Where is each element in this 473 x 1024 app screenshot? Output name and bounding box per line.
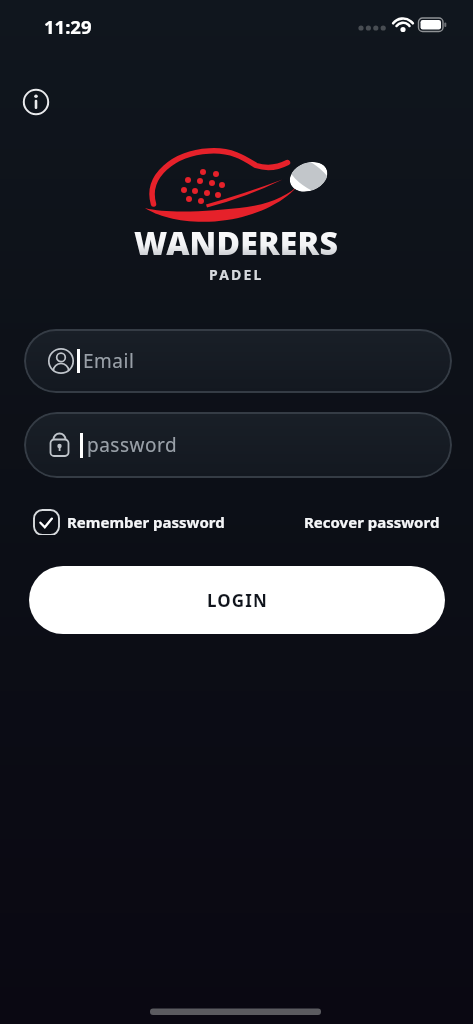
- button[interactable]: Remember password: [33, 508, 225, 535]
- button[interactable]: password: [24, 412, 452, 478]
- staticText: WANDERERS: [134, 221, 339, 265]
- staticText: Email: [83, 348, 135, 374]
- staticText: PADEL: [209, 265, 264, 284]
- staticText: password: [87, 432, 178, 458]
- staticText: Remember password: [67, 512, 225, 532]
- staticText: LOGIN: [207, 589, 268, 612]
- button[interactable]: Recover password: [304, 512, 440, 532]
- button[interactable]: Email: [24, 329, 452, 393]
- button[interactable]: [20, 86, 52, 118]
- button[interactable]: LOGIN: [29, 566, 445, 634]
- staticText: 11:29: [44, 14, 92, 39]
- staticText: Recover password: [304, 512, 440, 532]
